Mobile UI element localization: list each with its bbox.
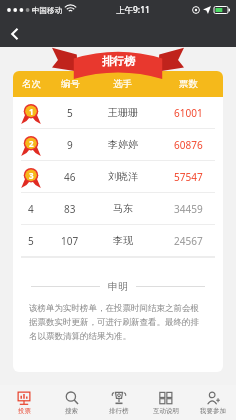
button[interactable]: 4	[13, 193, 223, 224]
button[interactable]: 互动说明	[142, 385, 189, 420]
staticText: 排行榜	[102, 54, 135, 68]
staticText: 刘晓洋	[108, 170, 138, 183]
staticText: 王珊珊	[108, 106, 138, 119]
staticText: 61001	[174, 106, 203, 120]
button[interactable]: 排行榜	[95, 385, 142, 420]
staticText: 1	[29, 106, 34, 117]
staticText: 46	[64, 170, 76, 184]
staticText: 票数	[179, 78, 198, 90]
staticText: 搜索	[65, 407, 78, 415]
staticText: 上午9:11	[116, 4, 150, 16]
staticText: 57547	[174, 170, 203, 184]
staticText: 名次	[22, 78, 41, 90]
staticText: 5	[67, 106, 73, 120]
staticText: 我要参加	[200, 407, 226, 415]
staticText: 3	[29, 170, 34, 181]
staticText: 编号	[61, 78, 80, 90]
button[interactable]: Back	[0, 20, 30, 47]
staticText: 4	[28, 202, 34, 216]
staticText: 互动说明	[153, 407, 179, 415]
button[interactable]: 投票	[0, 385, 48, 420]
staticText: 排行榜	[109, 407, 129, 415]
staticText: 24567	[174, 234, 203, 248]
staticText: 5	[28, 234, 34, 248]
button[interactable]: 2	[13, 129, 223, 160]
staticText: 选手	[113, 78, 132, 90]
staticText: 李现	[113, 234, 133, 247]
staticText: 中国移动	[32, 6, 62, 15]
staticText: 107	[61, 234, 79, 248]
staticText: 9	[67, 138, 73, 152]
staticText: 83	[64, 202, 76, 216]
staticText: 34459	[174, 202, 203, 216]
button[interactable]: 5	[13, 225, 223, 256]
staticText: 投票	[18, 407, 31, 415]
staticText: 2	[29, 138, 34, 149]
staticText: 李婷婷	[108, 138, 138, 151]
button[interactable]: 搜索	[48, 385, 95, 420]
button[interactable]: 3	[13, 161, 223, 192]
staticText: 申明	[108, 280, 128, 293]
button[interactable]: 我要参加	[189, 385, 236, 420]
staticText: 马东	[113, 202, 133, 215]
button[interactable]: 1	[13, 97, 223, 128]
staticText: 60876	[174, 138, 203, 152]
staticText: 该榜单为实时榜单，在投票时间结束之前会根据票数实时更新，可进行刷新查看。最终的排…	[29, 303, 207, 342]
